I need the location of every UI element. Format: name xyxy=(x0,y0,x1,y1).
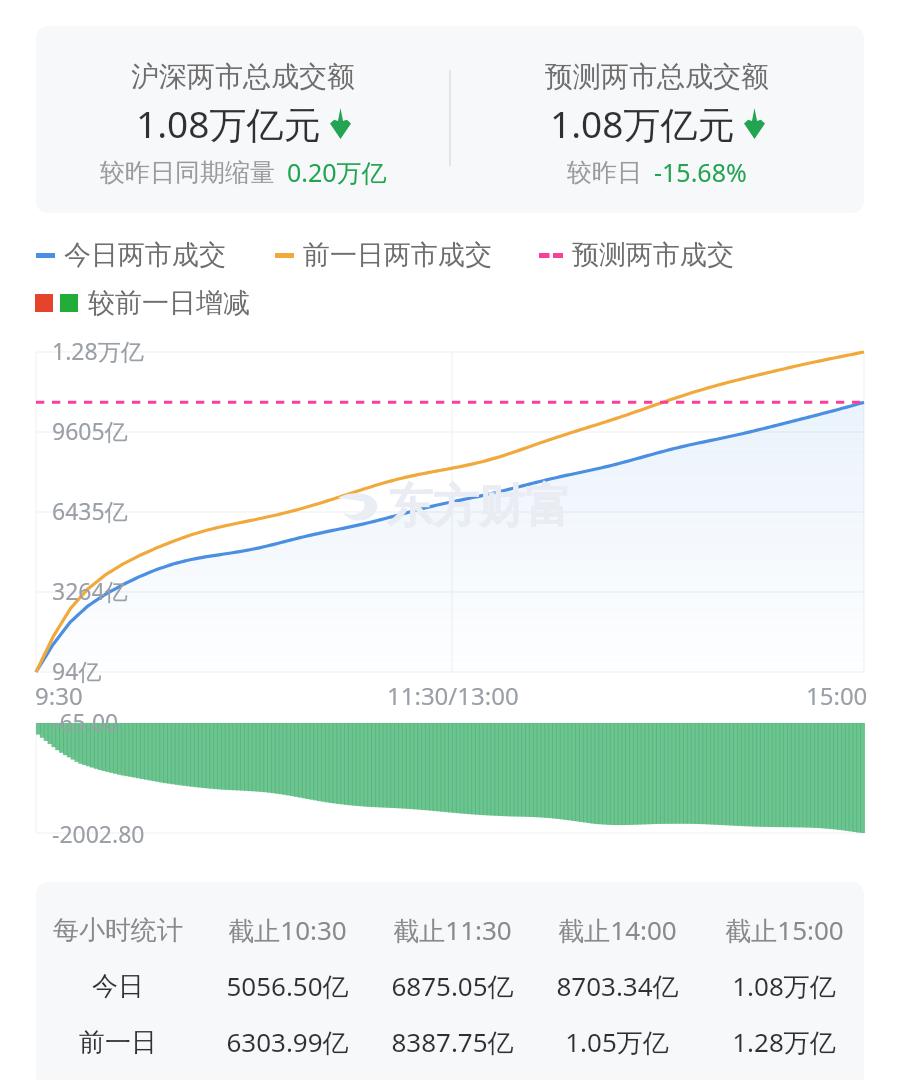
staticText: 5056.50亿 xyxy=(226,968,349,1004)
staticText: 6875.05亿 xyxy=(391,968,514,1004)
staticText: 9:30 xyxy=(35,679,83,712)
staticText: 15:00 xyxy=(806,679,868,712)
staticText: 6303.99亿 xyxy=(226,1024,349,1060)
staticText: 预测两市成交 xyxy=(572,238,734,272)
staticText: -65.00 xyxy=(52,706,119,737)
staticText: 前一日两市成交 xyxy=(303,238,492,272)
staticText: 截止15:00 xyxy=(725,912,844,948)
staticText: 沪深两市总成交额 xyxy=(131,59,355,94)
staticText: 0.20万亿 xyxy=(287,155,387,189)
staticText: 8703.34亿 xyxy=(556,968,679,1004)
staticText: 1.08万亿元 xyxy=(136,98,321,149)
staticText: 较昨日同期缩量 xyxy=(100,157,275,188)
button[interactable]: 沪深两市总成交额 xyxy=(36,26,864,213)
staticText: 预测两市总成交额 xyxy=(545,59,769,94)
staticText: 今日 xyxy=(92,970,144,1003)
staticText: 较昨日 xyxy=(567,157,642,188)
staticText: 截止11:30 xyxy=(393,912,512,948)
staticText: 截止10:30 xyxy=(228,912,347,948)
button[interactable]: 每小时统计 xyxy=(36,882,864,1080)
staticText: 8387.75亿 xyxy=(391,1024,514,1060)
staticText: 东方财富 xyxy=(387,478,571,536)
staticText: 1.08万亿元 xyxy=(550,98,735,149)
staticText: 1.08万亿 xyxy=(732,968,836,1004)
staticText: 1.05万亿 xyxy=(565,1024,669,1060)
button[interactable]: 较前一日增减 xyxy=(35,286,250,320)
staticText: 94亿 xyxy=(52,655,102,686)
staticText: 今日两市成交 xyxy=(64,238,226,272)
staticText: 11:30/13:00 xyxy=(387,679,519,712)
staticText: 前一日 xyxy=(79,1026,157,1059)
staticText: 1.28万亿 xyxy=(52,335,144,366)
staticText: 截止14:00 xyxy=(558,912,677,948)
staticText: 3264亿 xyxy=(52,575,128,606)
staticText: 较前一日增减 xyxy=(88,286,250,320)
staticText: 6435亿 xyxy=(52,495,128,526)
staticText: 9605亿 xyxy=(52,415,128,446)
staticText: -2002.80 xyxy=(52,818,145,849)
button[interactable]: 今日两市成交 xyxy=(36,237,734,273)
staticText: 1.28万亿 xyxy=(732,1024,836,1060)
staticText: -15.68% xyxy=(654,155,747,189)
staticText: 每小时统计 xyxy=(53,914,183,947)
